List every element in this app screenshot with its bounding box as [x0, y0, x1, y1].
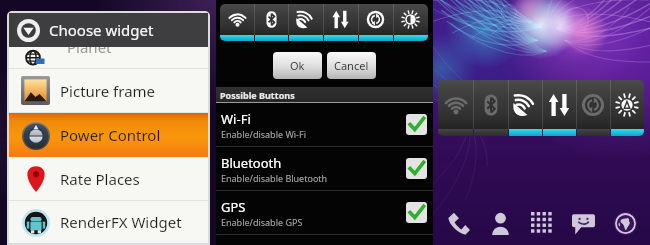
- button[interactable]: Mobile data: [323, 4, 358, 35]
- button[interactable]: Brightness: [610, 80, 644, 129]
- button[interactable]: Planet: [9, 47, 208, 68]
- button[interactable]: Bluetooth: [473, 80, 508, 129]
- button[interactable]: Picture frame: [9, 69, 208, 112]
- button[interactable]: Browser: [608, 206, 642, 240]
- staticText: Possible Buttons: [220, 89, 295, 101]
- staticText: Planet: [67, 47, 112, 57]
- button[interactable]: GPS: [508, 80, 542, 129]
- button[interactable]: GPS: [216, 191, 433, 234]
- staticText: Picture frame: [60, 81, 156, 101]
- staticText: Enable/disable GPS: [221, 216, 303, 228]
- staticText: Enable/disable Wi-Fi: [221, 128, 306, 140]
- staticText: Ok: [290, 58, 305, 73]
- button[interactable]: Sync: [576, 80, 610, 129]
- button[interactable]: RenderFX Widget: [9, 201, 208, 243]
- staticText: Cancel: [334, 58, 369, 73]
- staticText: Enable/disable Bluetooth: [221, 172, 328, 184]
- button[interactable]: GPS: [288, 4, 323, 35]
- staticText: Power Control: [60, 125, 161, 145]
- staticText: RenderFX Widget: [60, 212, 182, 232]
- button[interactable]: Messaging: [566, 206, 600, 240]
- button[interactable]: Brightness: [393, 4, 428, 35]
- button[interactable]: Enabled: [406, 158, 427, 179]
- button[interactable]: Choose widget: [9, 13, 208, 47]
- staticText: Choose widget: [49, 20, 154, 40]
- staticText: Wi-Fi: [221, 110, 251, 128]
- button[interactable]: Contacts: [483, 206, 517, 240]
- button[interactable]: Rate Places: [9, 157, 208, 200]
- button[interactable]: Wi-Fi: [438, 80, 473, 129]
- button[interactable]: Wi-Fi: [220, 4, 254, 35]
- button[interactable]: Enabled: [406, 114, 427, 135]
- staticText: Bluetooth: [221, 154, 282, 172]
- button[interactable]: Bluetooth: [254, 4, 288, 35]
- button[interactable]: Wi-Fi: [216, 103, 433, 146]
- button[interactable]: Apps: [525, 206, 559, 240]
- staticText: GPS: [221, 198, 246, 216]
- button[interactable]: Phone: [441, 206, 475, 240]
- button[interactable]: Cancel: [327, 52, 376, 79]
- button[interactable]: Sync: [358, 4, 393, 35]
- button[interactable]: Bluetooth: [216, 147, 433, 190]
- staticText: Rate Places: [60, 169, 140, 189]
- button[interactable]: Ok: [273, 52, 322, 79]
- button[interactable]: Power Control: [9, 113, 208, 157]
- button[interactable]: Mobile data: [542, 80, 576, 129]
- button[interactable]: Enabled: [406, 202, 427, 223]
